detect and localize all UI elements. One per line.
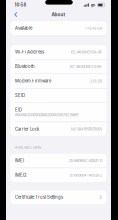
staticText: 35 660604 140539 2 xyxy=(69,173,102,177)
staticText: Available xyxy=(15,26,32,31)
button[interactable]: Carrier Lock xyxy=(10,122,107,136)
staticText: Carrier Lock xyxy=(15,126,39,132)
staticText: Wi-Fi Address xyxy=(15,49,44,55)
staticText: IMEI xyxy=(15,158,24,163)
staticText: 2.01.05 xyxy=(90,79,102,83)
button[interactable]: Bluetooth xyxy=(10,59,107,73)
staticText: AVAILABLE SIMS xyxy=(15,145,41,150)
staticText: No SIM restrictions xyxy=(71,127,102,131)
staticText: About xyxy=(51,12,65,17)
staticText: EID xyxy=(15,107,22,113)
staticText: IMEI2 xyxy=(15,172,27,178)
staticText: EC:46:84:E8:A5:6A xyxy=(70,64,102,69)
staticText: 119.43 GB xyxy=(85,26,102,30)
button[interactable]: SEID xyxy=(10,88,107,102)
staticText: EC:46:84:E3:5A:8F xyxy=(71,50,102,54)
staticText: 10:58 xyxy=(14,2,26,7)
button[interactable]: EID xyxy=(10,103,107,121)
staticText: Modem Firmware xyxy=(15,78,51,84)
staticText: SEID xyxy=(15,93,25,98)
staticText: 89049032005008882600033574129661 xyxy=(15,113,79,117)
button[interactable]: Certificate Trust Settings xyxy=(10,190,107,204)
staticText: Bluetooth xyxy=(15,64,35,69)
button[interactable]: Available xyxy=(10,21,107,35)
button[interactable]: Back xyxy=(6,10,21,19)
button[interactable]: IMEI2 xyxy=(10,168,107,182)
button[interactable]: Wi-Fi Address xyxy=(10,45,107,59)
staticText: 35 660604 140521 0 xyxy=(69,158,102,163)
button[interactable]: IMEI xyxy=(10,154,107,167)
button[interactable]: Modem Firmware xyxy=(10,74,107,88)
staticText: Certificate Trust Settings xyxy=(15,195,63,200)
